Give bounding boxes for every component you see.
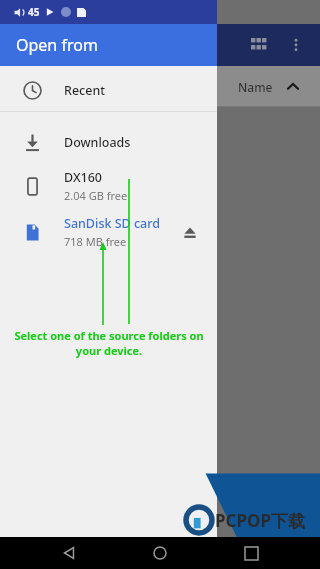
staticText: DX160 <box>64 169 102 186</box>
staticText: 45 <box>28 5 40 19</box>
staticText: PCPOP下载 <box>215 509 306 532</box>
button[interactable]: Name <box>238 79 299 95</box>
button[interactable]: Back <box>47 537 91 569</box>
staticText: SanDisk SD card <box>64 215 161 232</box>
button[interactable]: Home <box>138 537 182 569</box>
staticText: 2.04 GB free <box>64 188 128 203</box>
button[interactable]: Recents <box>229 537 273 569</box>
button[interactable]: Recent <box>0 69 217 111</box>
staticText: Select one of the source folders on your… <box>14 328 204 358</box>
button[interactable]: DX160 <box>0 163 217 209</box>
staticText: 718 MB free <box>64 234 127 249</box>
staticText: Downloads <box>64 134 131 151</box>
button[interactable]: Eject SD card <box>177 219 203 245</box>
staticText: Name <box>238 79 273 95</box>
staticText: Recent <box>64 82 106 99</box>
button[interactable]: Grid view <box>238 25 278 65</box>
staticText: Open from <box>16 34 98 56</box>
button[interactable]: More options <box>278 27 314 63</box>
button[interactable]: Downloads <box>0 121 217 163</box>
button[interactable]: SanDisk SD card <box>0 209 217 255</box>
